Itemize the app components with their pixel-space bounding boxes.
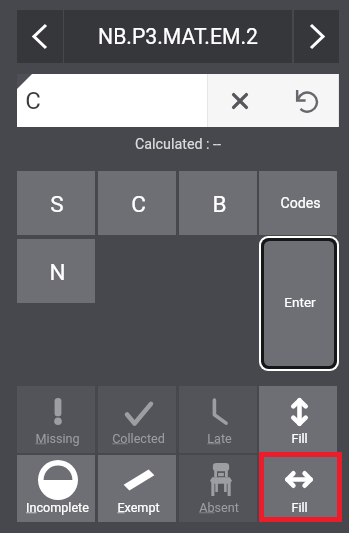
staticText: Fill bbox=[291, 431, 308, 446]
staticText: N bbox=[49, 259, 66, 285]
button[interactable]: C bbox=[17, 74, 207, 127]
button[interactable]: Exempt bbox=[98, 455, 176, 522]
staticText: Absent bbox=[199, 500, 239, 515]
button[interactable]: Incomplete bbox=[17, 455, 95, 522]
button[interactable]: Undo bbox=[274, 74, 338, 127]
button[interactable]: B bbox=[179, 171, 257, 235]
button[interactable]: N bbox=[17, 239, 95, 303]
button[interactable]: S bbox=[17, 171, 95, 235]
staticText: Collected bbox=[112, 431, 165, 446]
button[interactable]: NB.P3.MAT.EM.2 bbox=[64, 10, 292, 63]
button[interactable]: Late bbox=[179, 386, 257, 453]
button[interactable]: C bbox=[98, 171, 176, 235]
button[interactable]: Missing bbox=[17, 386, 95, 453]
button[interactable]: Enter bbox=[264, 241, 334, 366]
staticText: Exempt bbox=[117, 500, 160, 515]
button[interactable]: Previous bbox=[17, 10, 63, 63]
staticText: S bbox=[50, 191, 64, 217]
button[interactable]: Absent bbox=[179, 455, 257, 522]
staticText: Calculated : -- bbox=[135, 136, 221, 153]
button[interactable]: Fill bbox=[259, 455, 337, 522]
button[interactable]: Collected bbox=[98, 386, 176, 453]
button[interactable]: Codes bbox=[259, 171, 337, 235]
staticText: Late bbox=[207, 431, 232, 446]
staticText: Fill bbox=[291, 500, 308, 515]
staticText: Missing bbox=[35, 431, 80, 446]
staticText: NB.P3.MAT.EM.2 bbox=[98, 24, 258, 49]
staticText: C bbox=[131, 191, 146, 217]
button[interactable]: Fill bbox=[259, 386, 337, 453]
staticText: Codes bbox=[280, 195, 321, 212]
button[interactable]: Clear bbox=[208, 74, 274, 127]
staticText: Incomplete bbox=[26, 500, 89, 515]
staticText: C bbox=[25, 87, 41, 115]
staticText: Enter bbox=[284, 294, 316, 310]
button[interactable]: Next bbox=[294, 10, 339, 63]
staticText: B bbox=[212, 191, 227, 217]
